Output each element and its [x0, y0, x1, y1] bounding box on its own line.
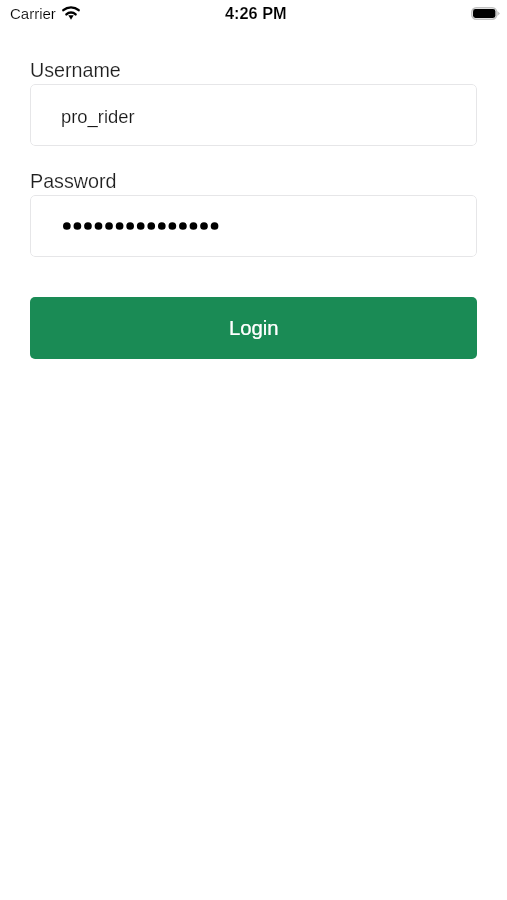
- button[interactable]: pro_rider: [30, 84, 477, 146]
- button[interactable]: [30, 195, 477, 257]
- staticText: Password: [30, 170, 117, 192]
- staticText: pro_rider: [61, 106, 135, 127]
- staticText: Username: [30, 59, 121, 81]
- staticText: Login: [229, 317, 279, 340]
- other: Battery full: [471, 7, 500, 20]
- other: Wi-Fi: [62, 5, 80, 18]
- staticText: Carrier: [10, 5, 56, 22]
- staticText: 4:26 PM: [225, 4, 287, 22]
- button[interactable]: Login: [30, 297, 477, 359]
